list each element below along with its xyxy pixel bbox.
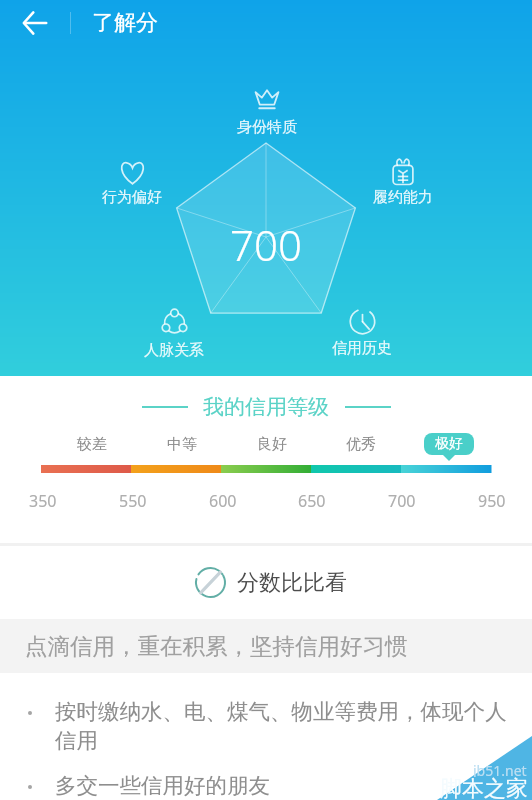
button[interactable]: 分数比比看 — [0, 546, 532, 619]
staticText: 较差 — [77, 435, 107, 454]
staticText: 良好 — [257, 435, 287, 454]
staticText: 脚本之家 — [440, 775, 528, 799]
staticText: 了解分 — [92, 9, 158, 37]
staticText: 550 — [119, 490, 147, 512]
staticText: 极好 — [435, 435, 463, 453]
staticText: 600 — [209, 490, 237, 512]
staticText: 优秀 — [346, 435, 376, 454]
staticText: 身份特质 — [237, 118, 297, 137]
staticText: 行为偏好 — [102, 188, 162, 207]
staticText: 按时缴纳水、电、煤气、物业等费用，体现个人信用 — [55, 698, 507, 755]
staticText: 950 — [478, 490, 506, 512]
staticText: jb51.net — [473, 761, 527, 777]
button[interactable]: Back — [0, 0, 70, 45]
staticText: 650 — [298, 490, 326, 512]
staticText: 履约能力 — [373, 188, 433, 207]
staticText: 信用历史 — [332, 339, 392, 358]
staticText: 多交一些信用好的朋友 — [55, 772, 270, 799]
staticText: 700 — [230, 216, 302, 273]
staticText: 700 — [388, 490, 416, 512]
staticText: 分数比比看 — [237, 569, 347, 597]
staticText: 中等 — [167, 435, 197, 454]
staticText: 点滴信用，重在积累，坚持信用好习惯 — [25, 632, 408, 660]
staticText: 350 — [29, 490, 57, 512]
staticText: 我的信用等级 — [203, 394, 329, 420]
staticText: 人脉关系 — [144, 341, 204, 360]
